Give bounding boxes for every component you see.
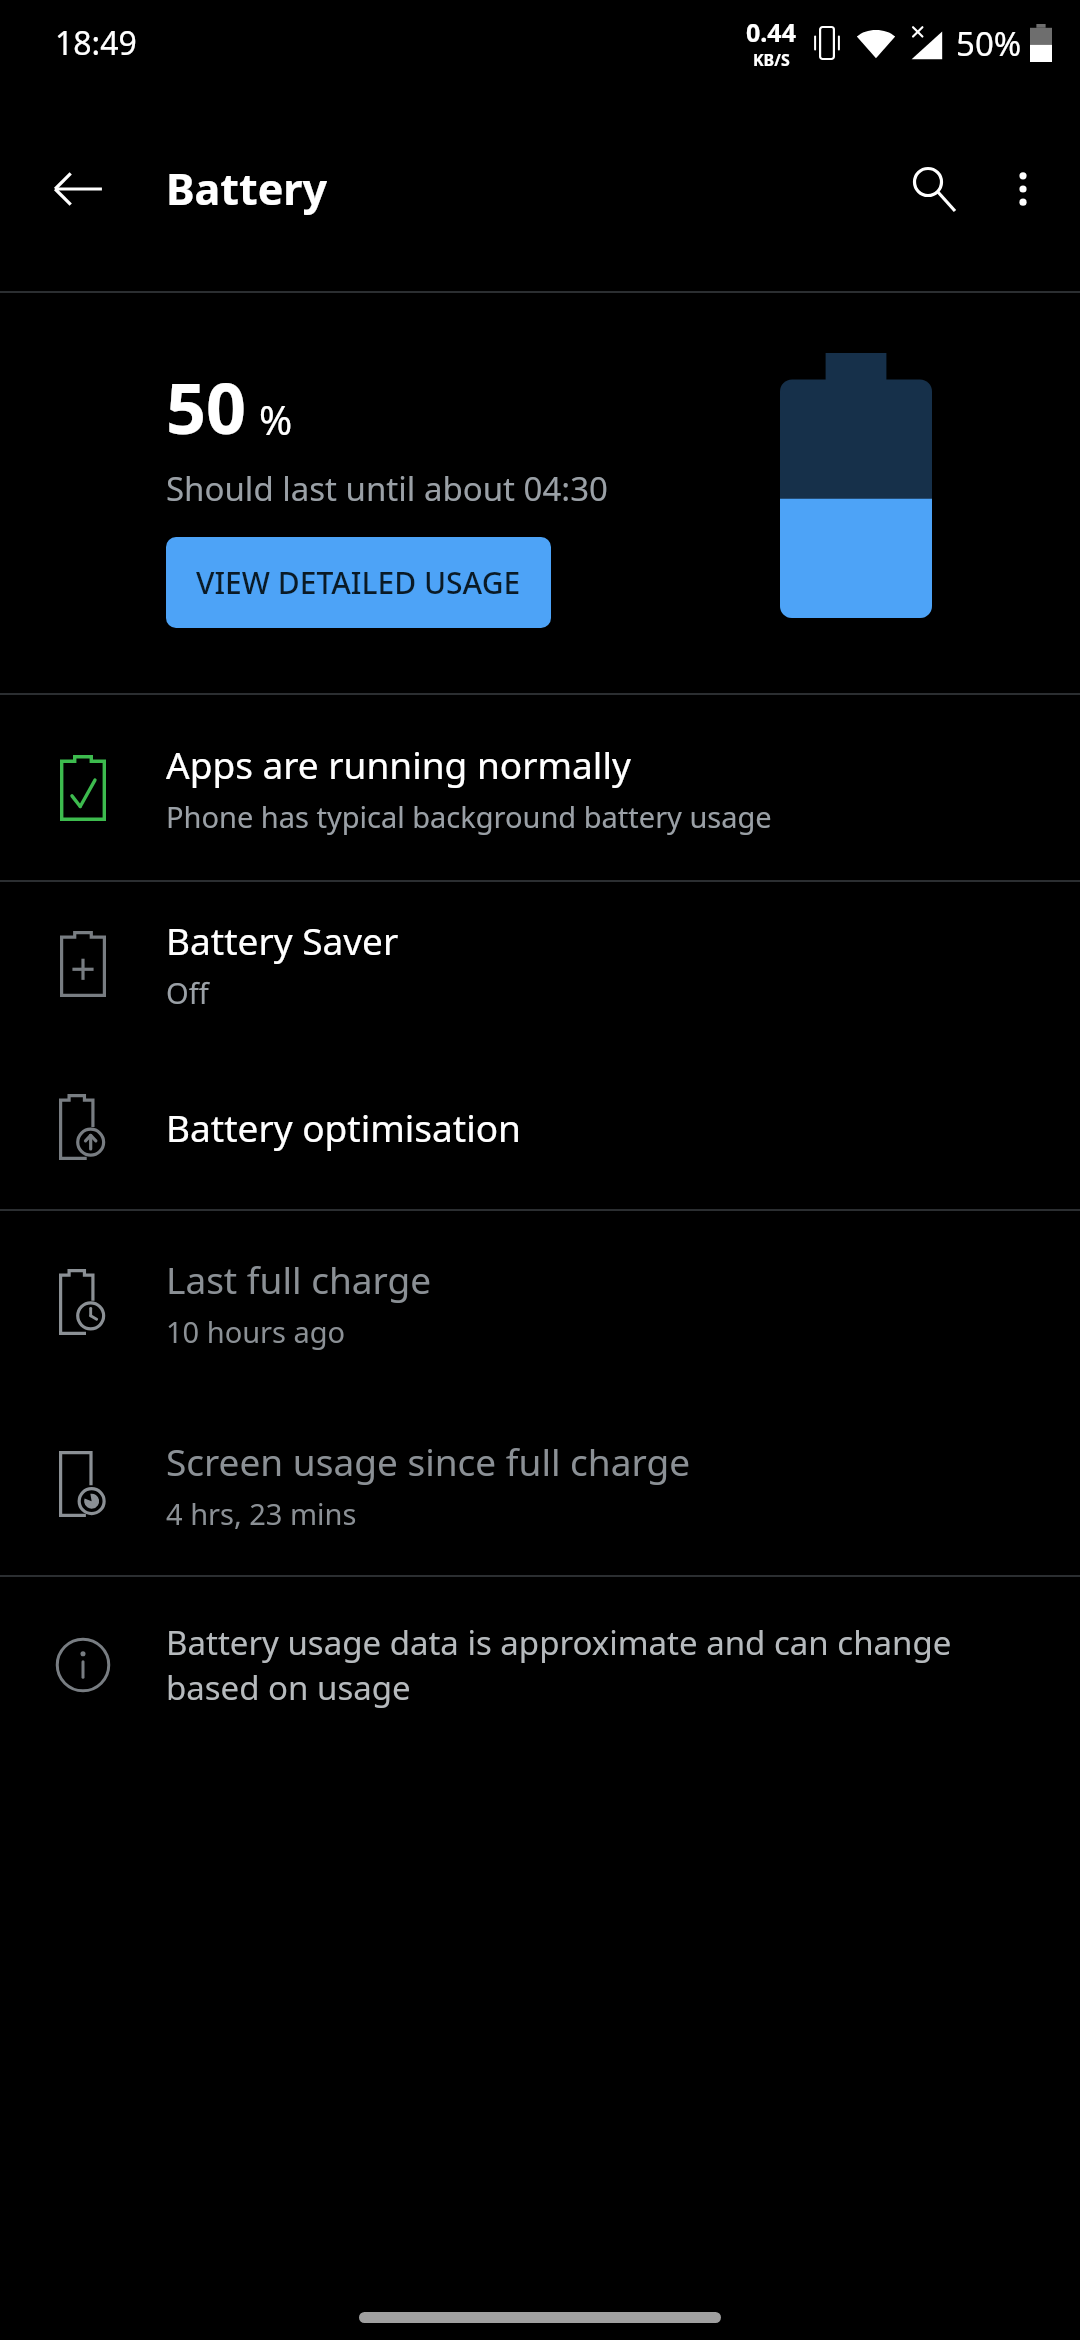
staticText: Should last until about 04:30 [166, 466, 608, 511]
button[interactable]: Back [30, 141, 126, 237]
staticText: Battery usage data is approximate and ca… [166, 1620, 1025, 1709]
staticText: 10 hours ago [166, 1312, 346, 1351]
staticText: Phone has typical background battery usa… [166, 797, 772, 836]
staticText: % [259, 392, 293, 446]
staticText: Off [166, 973, 209, 1012]
staticText: Screen usage since full charge [166, 1436, 691, 1486]
staticText: VIEW DETAILED USAGE [196, 562, 521, 603]
staticText: 50% [956, 21, 1022, 66]
staticText: 4 hrs, 23 mins [166, 1494, 357, 1533]
staticText: 50 [166, 359, 247, 454]
button[interactable]: Last full charge [0, 1211, 1080, 1393]
staticText: Last full charge [166, 1254, 432, 1304]
staticText: Apps are running normally [166, 739, 631, 789]
staticText: Battery optimisation [166, 1102, 521, 1152]
button[interactable]: Apps are running normally [0, 695, 1080, 880]
button[interactable]: More options [984, 141, 1062, 237]
button[interactable]: VIEW DETAILED USAGE [166, 537, 551, 628]
staticText: Battery Saver [166, 915, 399, 965]
staticText: KB/S [753, 49, 790, 71]
button[interactable]: Screen usage since full charge [0, 1393, 1080, 1575]
button[interactable]: Battery optimisation [0, 1045, 1080, 1209]
button[interactable]: Battery Saver [0, 882, 1080, 1045]
button[interactable]: Search [884, 139, 984, 239]
staticText: Battery [166, 159, 328, 218]
staticText: 0.44 [746, 15, 796, 49]
staticText: 18:49 [55, 21, 137, 65]
